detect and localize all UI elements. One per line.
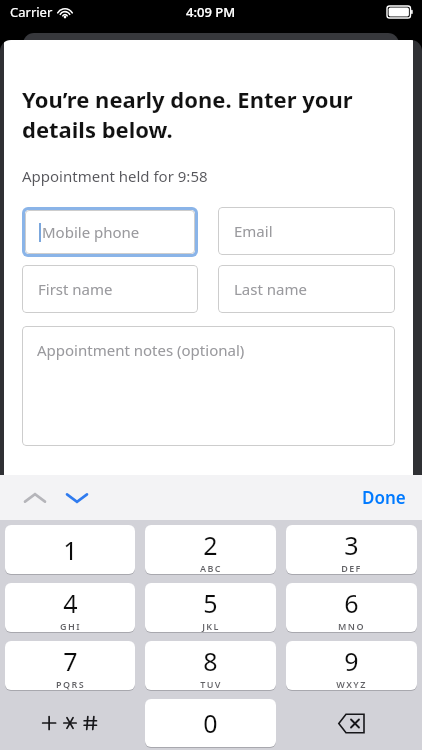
staticText: 5 [203,586,218,620]
staticText: Mobile phone [42,222,140,242]
staticText: You’re nearly done. Enter your details b… [22,84,353,144]
staticText: 6 [344,586,359,620]
staticText: 4 [63,586,78,620]
staticText: 0 [203,706,218,740]
staticText: PQRS [56,678,85,690]
button[interactable]: Delete [286,699,417,747]
staticText: 8 [203,644,218,678]
staticText: GHI [60,620,81,632]
staticText: MNO [338,620,365,632]
button[interactable]: Email [218,207,395,255]
button[interactable]: 7 [5,641,135,690]
button[interactable]: Next field [60,481,94,515]
staticText: TUV [200,678,222,690]
staticText: 1 [63,533,78,567]
button[interactable]: First name [22,265,198,313]
staticText: Done [362,486,406,509]
button[interactable]: 6 [286,583,417,632]
button[interactable]: 2 [145,525,276,574]
staticText: Carrier [10,3,53,21]
staticText: 7 [63,644,78,678]
staticText: 2 [203,528,218,562]
button[interactable]: Last name [218,265,395,313]
button[interactable]: Appointment notes (optional) [22,326,395,446]
staticText: Email [234,221,273,241]
staticText: WXYZ [336,678,367,690]
staticText: Appointment held for 9:58 [22,166,208,186]
button[interactable]: Symbols [5,699,135,747]
button[interactable]: 4 [5,583,135,632]
button[interactable]: 0 [145,699,276,747]
staticText: Appointment notes (optional) [37,340,245,360]
button[interactable]: 1 [5,525,135,574]
button[interactable]: Done [346,478,422,517]
staticText: 4:09 PM [186,3,236,21]
staticText: Last name [234,279,307,299]
staticText: 9 [344,644,359,678]
button[interactable]: 8 [145,641,276,690]
staticText: JKL [202,620,220,632]
button[interactable]: 3 [286,525,417,574]
staticText: 3 [344,528,359,562]
staticText: ABC [200,562,222,574]
staticText: DEF [341,562,362,574]
button[interactable]: Mobile phone [25,210,195,254]
staticText: First name [38,279,113,299]
button[interactable]: 9 [286,641,417,690]
button[interactable]: 5 [145,583,276,632]
button[interactable]: Previous field [18,481,52,515]
button[interactable]: Home [337,49,422,88]
